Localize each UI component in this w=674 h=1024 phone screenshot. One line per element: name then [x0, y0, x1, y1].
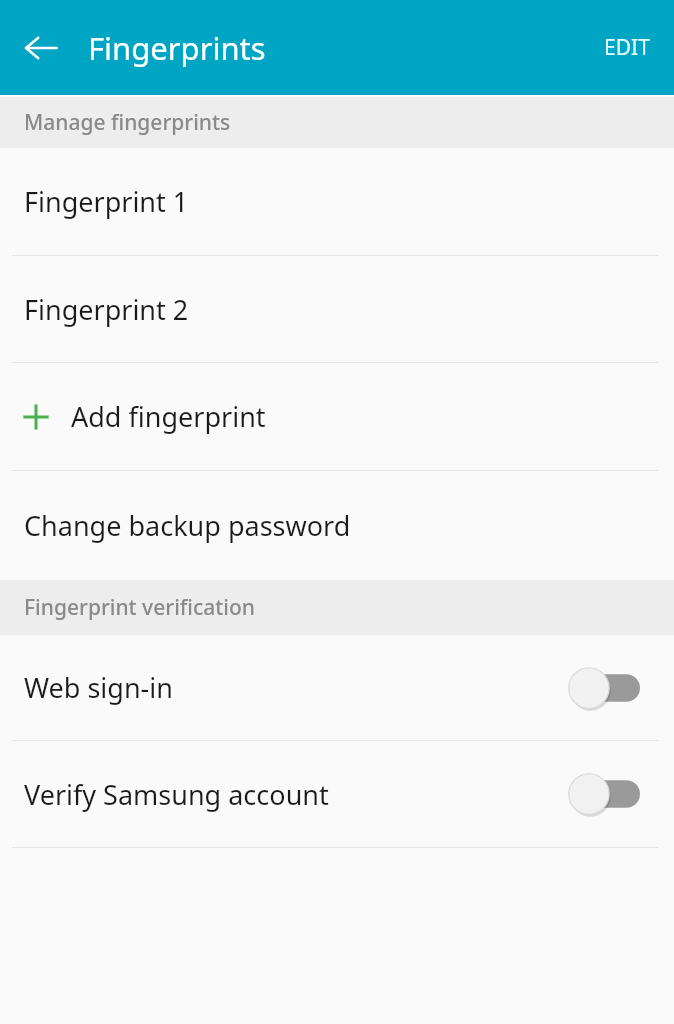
button[interactable]: Verify Samsung account toggle, off: [568, 771, 640, 817]
staticText: Fingerprint 1: [24, 183, 189, 220]
staticText: Fingerprint verification: [24, 593, 255, 622]
button[interactable]: Verify Samsung account: [0, 741, 674, 847]
button[interactable]: Web sign-in: [0, 635, 674, 740]
staticText: Fingerprint 2: [24, 291, 189, 328]
button[interactable]: Web sign-in toggle, off: [568, 665, 640, 711]
staticText: Verify Samsung account: [24, 776, 568, 813]
staticText: Add fingerprint: [71, 398, 266, 435]
button[interactable]: Back: [14, 21, 68, 75]
button[interactable]: Add fingerprint: [0, 363, 674, 470]
staticText: Fingerprints: [88, 27, 266, 69]
button[interactable]: Fingerprint 1: [0, 148, 674, 255]
staticText: Manage fingerprints: [24, 108, 231, 137]
staticText: Change backup password: [24, 507, 351, 544]
button[interactable]: EDIT: [590, 0, 664, 95]
button[interactable]: Fingerprint 2: [0, 256, 674, 362]
staticText: EDIT: [604, 33, 650, 62]
staticText: Web sign-in: [24, 669, 568, 706]
button[interactable]: Change backup password: [0, 471, 674, 580]
